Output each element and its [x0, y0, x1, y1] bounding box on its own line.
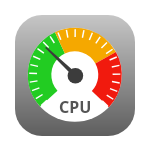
staticText: CPU: [59, 96, 92, 118]
button[interactable]: CPU gauge: [0, 0, 150, 150]
